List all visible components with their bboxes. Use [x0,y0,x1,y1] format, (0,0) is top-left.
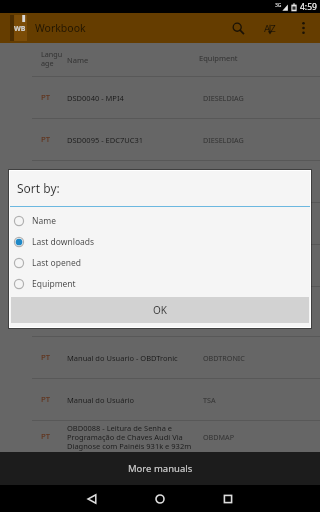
button[interactable]: Sort A to Z [255,13,289,43]
button[interactable]: Equipment [10,273,310,294]
staticText: OBDTRONIC [203,353,245,363]
staticText: Manual de Instalação - Scanner [67,307,178,317]
staticText: PT [41,431,51,442]
button[interactable]: PT [0,287,320,336]
button[interactable]: More options [289,13,317,43]
staticText: PT [41,218,51,229]
button[interactable]: OK [11,297,309,323]
button[interactable]: PT [0,245,320,286]
button[interactable]: Back [58,485,126,512]
button[interactable]: Home [126,485,194,512]
staticText: Last downloads [32,236,95,248]
staticText: Language [41,49,66,68]
staticText: Name [67,55,89,65]
staticText: Equipment [199,53,238,63]
staticText: Workbook [35,21,86,35]
staticText: Equipment [32,278,76,290]
staticText: PT [41,352,51,363]
button[interactable]: Last opened [10,252,310,273]
button[interactable]: PT [0,379,320,420]
staticText: Manual do Usuario - OBDTronic [67,353,178,363]
staticText: PT [41,394,51,405]
staticText: Sort by: [17,180,60,196]
button[interactable]: Recent apps [194,485,262,512]
staticText: 4:59 [300,1,317,13]
button[interactable]: PT [0,77,320,118]
staticText: TSA [203,395,216,405]
staticText: PT [41,134,51,145]
button[interactable]: PT [0,119,320,160]
staticText: AZ [264,22,276,35]
staticText: DIESELDIAG [203,135,244,145]
button[interactable]: Last downloads [10,231,310,252]
staticText: Last opened [32,257,82,269]
staticText: OBD0088 - Leitura de Senha e Programação… [67,423,197,451]
button[interactable]: More manuals [0,452,320,485]
staticText: OBDMAP [203,432,234,442]
staticText: OK [153,303,167,317]
staticText: DSD0095 - EDC7UC31 [67,135,144,145]
staticText: PT [41,260,51,271]
staticText: More manuals [128,462,193,475]
staticText: WB [14,24,26,34]
button[interactable]: PT [0,161,320,202]
staticText: DIESELDIAG [203,93,244,103]
staticText: PT [41,92,51,103]
staticText: DSD0120 - MS6.1 [67,261,128,271]
staticText: 3G [275,2,282,9]
button[interactable]: Search [221,13,255,43]
staticText: Name [32,215,56,227]
button[interactable]: PT [0,203,320,244]
button[interactable]: Name [10,210,310,231]
staticText: Manual do Usuário [67,395,134,405]
button[interactable]: PT [0,337,320,378]
staticText: PT [41,176,51,187]
staticText: DSD0040 - MPI4 [67,93,124,103]
button[interactable]: PT [0,421,320,452]
